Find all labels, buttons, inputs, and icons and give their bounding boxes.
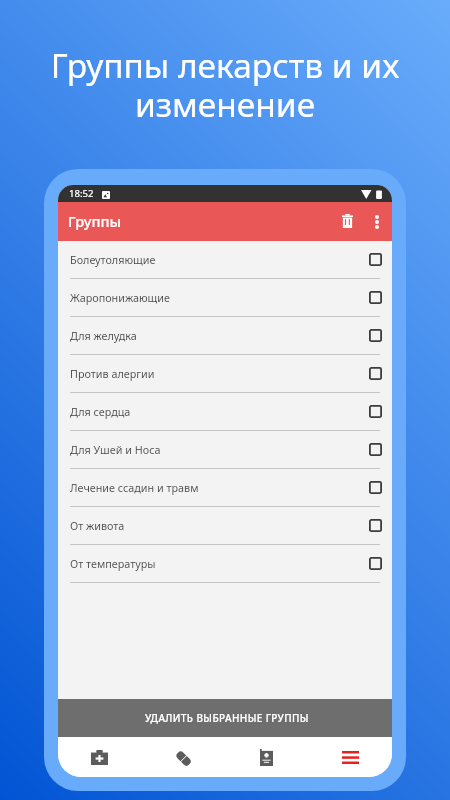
staticText: Группы лекарств и их изменение <box>22 42 428 126</box>
staticText: Для желудка <box>70 328 137 343</box>
staticText: УДАЛИТЬ ВЫБРАННЫЕ ГРУППЫ <box>145 711 309 725</box>
button[interactable]: Аптечка <box>58 737 141 777</box>
button[interactable]: Для желудка <box>58 317 392 354</box>
staticText: Болеутоляющие <box>70 252 156 267</box>
button[interactable]: Справочник <box>224 737 308 777</box>
staticText: От температуры <box>70 556 156 571</box>
staticText: Лечение ссадин и травм <box>70 480 199 495</box>
button[interactable]: Удалить <box>332 207 362 237</box>
staticText: Для Ушей и Носа <box>70 442 161 457</box>
staticText: Группы <box>68 211 122 231</box>
button[interactable]: От температуры <box>58 545 392 582</box>
staticText: 18:52 <box>69 187 94 200</box>
staticText: Для сердца <box>70 404 131 419</box>
button[interactable]: Ещё <box>362 207 392 237</box>
button[interactable]: УДАЛИТЬ ВЫБРАННЫЕ ГРУППЫ <box>58 699 392 737</box>
button[interactable]: Для Ушей и Носа <box>58 431 392 468</box>
button[interactable]: Лекарства <box>141 737 224 777</box>
button[interactable]: От живота <box>58 507 392 544</box>
staticText: Жаропонижающие <box>70 290 170 305</box>
staticText: От живота <box>70 518 125 533</box>
button[interactable]: Жаропонижающие <box>58 279 392 316</box>
button[interactable]: Группы <box>308 737 392 777</box>
button[interactable]: Против алергии <box>58 355 392 392</box>
button[interactable]: Лечение ссадин и травм <box>58 469 392 506</box>
staticText: Против алергии <box>70 366 155 381</box>
button[interactable]: Болеутоляющие <box>58 241 392 278</box>
button[interactable]: Для сердца <box>58 393 392 430</box>
